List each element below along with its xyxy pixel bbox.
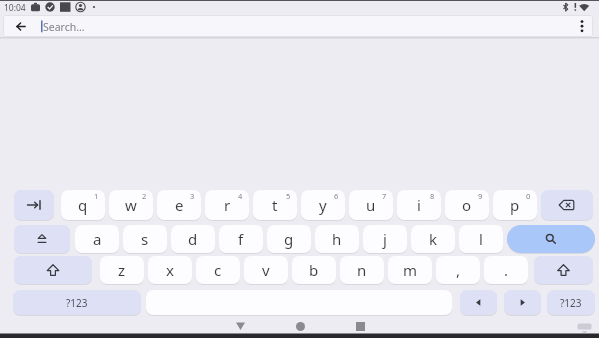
button[interactable]: s [123,225,167,253]
button[interactable]: z [100,256,144,284]
button[interactable]: t [253,190,297,220]
button[interactable]: ?123 [13,290,141,315]
button[interactable]: o [445,190,489,220]
staticText: y [319,195,327,215]
staticText: o [462,195,472,215]
staticText: 6 [334,191,339,201]
button[interactable] [346,314,374,338]
staticText: g [284,229,294,249]
button[interactable]: ?123 [547,290,595,315]
staticText: 7 [382,191,387,201]
staticText: u [366,195,376,215]
staticText: c [214,260,222,280]
staticText: 1 [94,191,99,201]
button[interactable]: r [205,190,249,220]
button[interactable]: q [61,190,105,220]
staticText: x [166,260,174,280]
button[interactable] [541,190,593,220]
button[interactable]: w [109,190,153,220]
button[interactable]: p [493,190,537,220]
staticText: ?123 [560,296,582,310]
staticText: 8 [430,191,435,201]
button[interactable] [507,225,595,253]
staticText: 3 [190,191,195,201]
staticText: r [224,195,231,215]
staticText: Search... [43,20,85,34]
button[interactable]: k [411,225,455,253]
button[interactable]: Search... [3,15,593,37]
button[interactable]: g [267,225,311,253]
staticText: j [383,229,387,249]
button[interactable]: d [171,225,215,253]
staticText: w [125,195,137,215]
button[interactable]: b [292,256,336,284]
staticText: 10:04 [4,2,26,14]
staticText: 2 [142,191,147,201]
staticText: k [429,229,438,249]
button[interactable] [14,190,54,220]
staticText: s [141,229,149,249]
button[interactable] [460,290,497,315]
staticText: h [332,229,342,249]
staticText: . [504,260,509,280]
staticText: v [262,260,270,280]
button[interactable]: u [349,190,393,220]
button[interactable]: i [397,190,441,220]
button[interactable]: v [244,256,288,284]
staticText: 0 [526,191,531,201]
staticText: d [188,229,198,249]
staticText: q [78,195,88,215]
button[interactable]: m [388,256,432,284]
button[interactable]: c [196,256,240,284]
button[interactable] [226,314,254,338]
button[interactable] [286,314,314,338]
staticText: f [238,229,244,249]
staticText: z [118,260,126,280]
button[interactable]: x [148,256,192,284]
staticText: 4 [238,191,243,201]
button[interactable]: a [75,225,119,253]
staticText: b [309,260,319,280]
staticText: 5 [286,191,291,201]
button[interactable]: , [436,256,480,284]
button[interactable] [14,256,92,284]
staticText: t [272,195,278,215]
staticText: i [417,195,421,215]
button[interactable]: y [301,190,345,220]
button[interactable]: l [459,225,503,253]
staticText: l [479,229,483,249]
staticText: 9 [478,191,483,201]
staticText: a [93,229,102,249]
button[interactable]: h [315,225,359,253]
button[interactable] [534,256,593,284]
button[interactable]: e [157,190,201,220]
staticText: ?123 [66,296,88,310]
staticText: m [403,260,418,280]
button[interactable]: n [340,256,384,284]
button[interactable] [504,290,541,315]
button[interactable]: j [363,225,407,253]
staticText: , [456,260,461,280]
staticText: n [357,260,367,280]
button[interactable] [14,225,70,253]
button[interactable]: f [219,225,263,253]
staticText: p [510,195,520,215]
staticText: e [175,195,184,215]
button[interactable]: . [484,256,528,284]
